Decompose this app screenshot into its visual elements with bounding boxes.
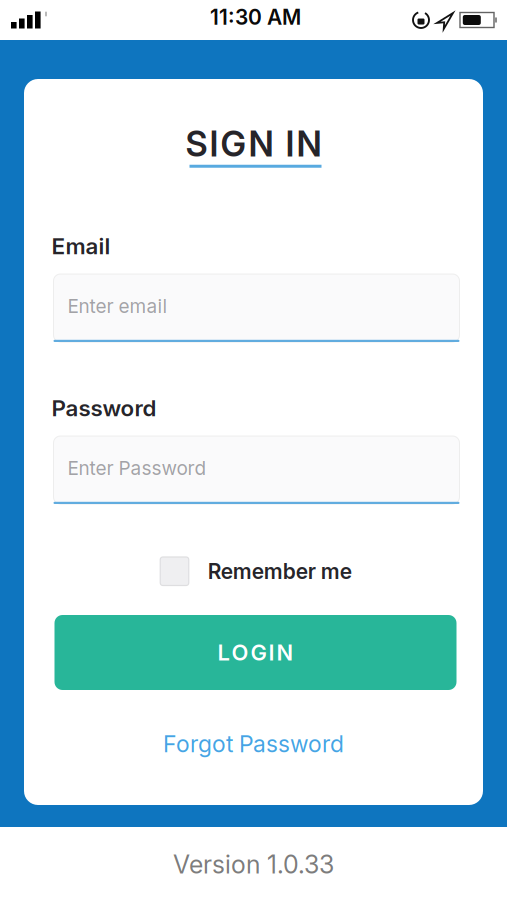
staticText: Enter Password xyxy=(67,456,206,479)
button[interactable]: Enter email xyxy=(53,274,459,342)
staticText: Email xyxy=(51,232,110,260)
staticText: Version 1.0.33 xyxy=(173,849,334,880)
staticText: Enter email xyxy=(67,294,167,317)
staticText: L O G I N xyxy=(217,639,293,666)
staticText: Forgot Password xyxy=(163,730,344,758)
button[interactable]: Enter Password xyxy=(53,436,459,504)
staticText: Remember me xyxy=(208,558,352,584)
staticText: S I G N I N xyxy=(185,123,321,165)
button[interactable]: L O G I N xyxy=(54,615,456,690)
button[interactable]: Forgot Password xyxy=(163,730,344,758)
button[interactable]: Remember me xyxy=(160,557,352,585)
staticText: Password xyxy=(51,394,156,422)
staticText: 11:30 AM xyxy=(210,4,301,30)
